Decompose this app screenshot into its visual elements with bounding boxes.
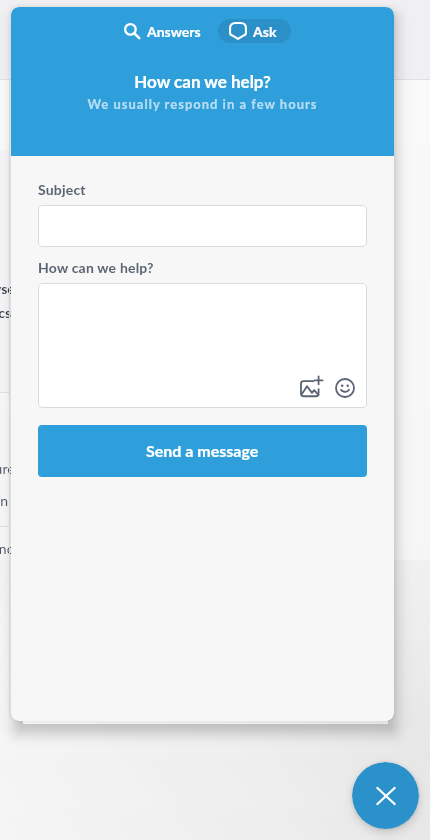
button[interactable]: Attach image (300, 377, 322, 399)
staticText: How can we help? (38, 259, 154, 276)
staticText: Send a message (146, 441, 259, 460)
button[interactable] (38, 205, 367, 247)
button[interactable]: Insert emoji (334, 377, 356, 399)
staticText: Subject (38, 181, 86, 198)
staticText: Answers (147, 23, 201, 40)
staticText: Announce (0, 540, 21, 557)
button[interactable]: Close chat (352, 762, 419, 829)
button[interactable]: Answers (114, 19, 211, 43)
staticText: Topics (0, 304, 12, 321)
staticText: Open (0, 492, 9, 509)
staticText: We usually respond in a few hours (87, 96, 318, 112)
staticText: Feature (0, 460, 15, 477)
button[interactable]: Ask (218, 19, 291, 43)
staticText: How can we help? (134, 71, 271, 91)
staticText: Ask (253, 23, 277, 40)
button[interactable]: Attach image (38, 283, 367, 408)
staticText: Browse (0, 280, 15, 297)
button[interactable]: Send a message (38, 425, 367, 477)
